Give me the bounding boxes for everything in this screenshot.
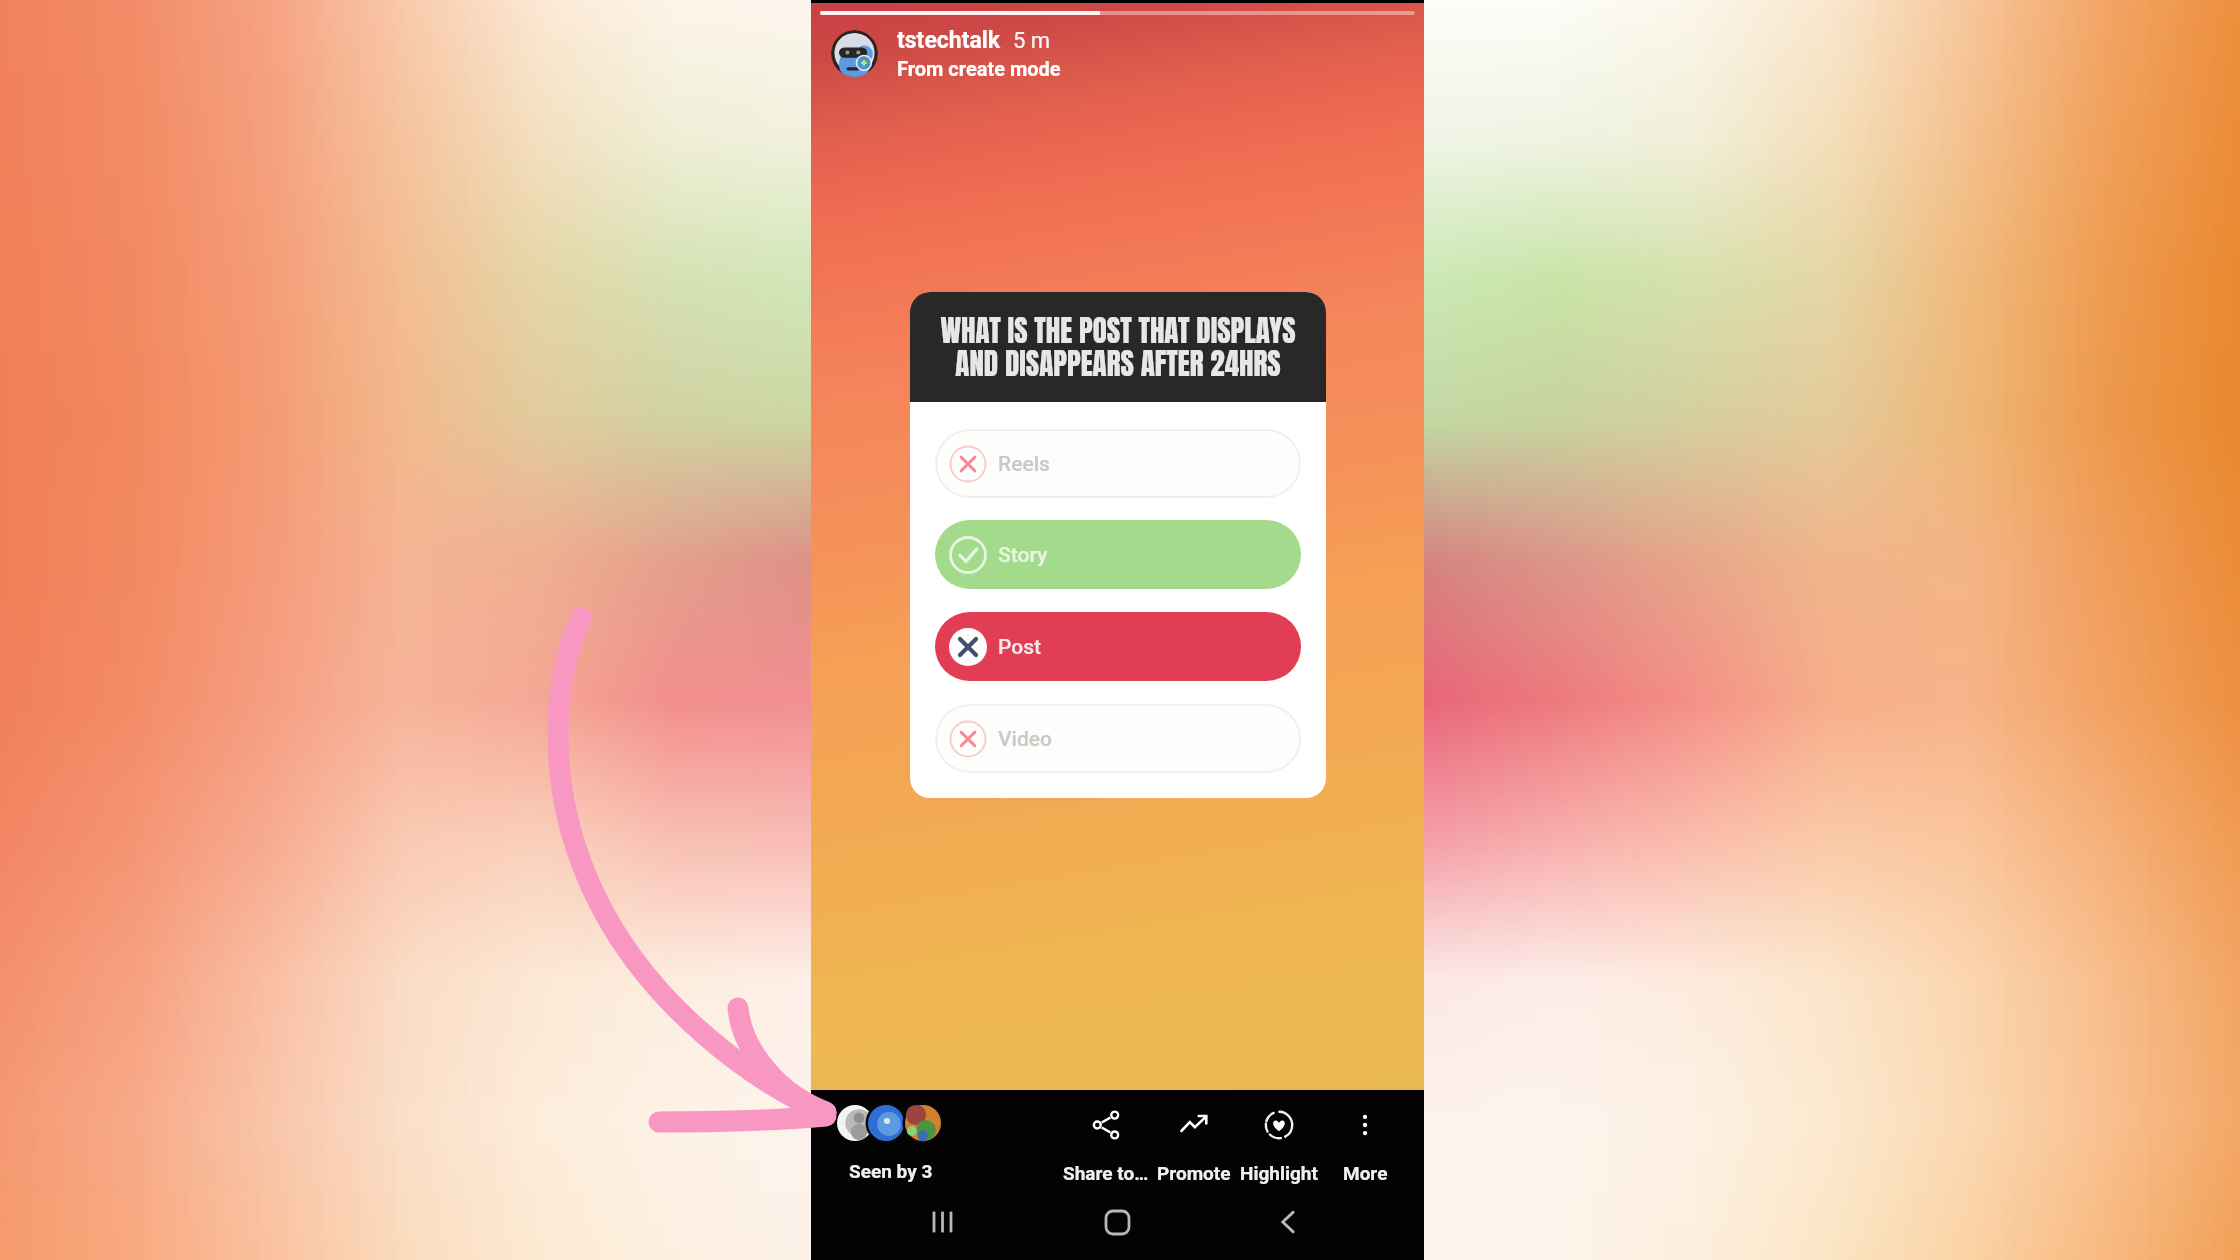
staticText: 5 m (1013, 28, 1051, 54)
button[interactable]: Seen by 3 (838, 1104, 948, 1182)
staticText: tstechtalk (897, 27, 1001, 54)
button[interactable]: Story (935, 520, 1301, 589)
button[interactable]: Home (1091, 1196, 1143, 1248)
staticText: Post (998, 635, 1041, 660)
button[interactable]: Back (1262, 1196, 1314, 1248)
button[interactable]: tstechtalk (831, 27, 1061, 80)
button[interactable]: Reels (935, 429, 1301, 498)
button[interactable]: Highlight (1219, 1108, 1339, 1184)
staticText: WHAT IS THE POST THAT DISPLAYS AND DISAP… (920, 309, 1316, 385)
staticText: Video (998, 727, 1052, 752)
staticText: Promote (1157, 1162, 1231, 1184)
button[interactable]: Post (935, 612, 1301, 681)
staticText: Reels (998, 452, 1050, 477)
staticText: From create mode (897, 57, 1061, 80)
button[interactable]: Share to… (1046, 1108, 1166, 1184)
staticText: Highlight (1240, 1162, 1318, 1184)
staticText: Seen by 3 (849, 1160, 933, 1182)
staticText: More (1343, 1162, 1388, 1184)
button[interactable]: More (1305, 1108, 1425, 1184)
button[interactable]: Promote (1134, 1108, 1254, 1184)
button[interactable]: Video (935, 704, 1301, 773)
staticText: Story (998, 543, 1048, 568)
staticText: Share to… (1063, 1162, 1149, 1184)
button[interactable]: Recent apps (917, 1196, 969, 1248)
